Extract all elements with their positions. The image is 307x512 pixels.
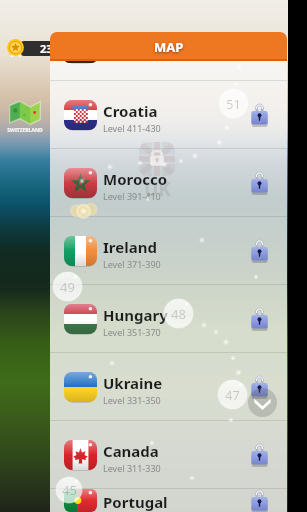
other: Locked <box>251 376 268 397</box>
button[interactable]: MAP <box>50 32 287 61</box>
staticText: Level 411-430 <box>103 122 161 134</box>
staticText: 45 <box>62 481 77 499</box>
button[interactable]: Hungary <box>50 285 287 352</box>
staticText: Level 331-350 <box>103 394 161 406</box>
staticText: Ukraine <box>103 373 163 393</box>
button[interactable]: Portugal <box>50 489 287 512</box>
button[interactable]: Morocco <box>50 149 287 216</box>
staticText: 230 <box>40 41 59 56</box>
other: Locked <box>251 172 268 193</box>
other: Coins <box>5 37 26 58</box>
staticText: Croatia <box>103 101 158 121</box>
staticText: Portugal <box>103 492 168 512</box>
button[interactable]: Scroll down <box>248 388 277 417</box>
staticText: Hungary <box>103 305 168 325</box>
button[interactable]: Ukraine <box>50 353 287 420</box>
staticText: Level 391-410 <box>103 190 161 202</box>
staticText: 51 <box>226 95 241 113</box>
other: Locked <box>251 490 268 511</box>
staticText: SWITZERLAND <box>3 127 47 134</box>
staticText: 47 <box>225 386 240 404</box>
staticText: Ireland <box>103 237 157 257</box>
staticText: 48 <box>171 305 186 323</box>
staticText: Canada <box>103 441 159 461</box>
other: Locked <box>251 104 268 125</box>
staticText: Morocco <box>103 169 168 189</box>
button[interactable]: Canada <box>50 421 287 488</box>
button[interactable]: 230 <box>21 41 61 56</box>
other: Locked <box>251 444 268 465</box>
other: Locked <box>251 308 268 329</box>
staticText: Level 311-330 <box>103 462 161 474</box>
other: Locked <box>251 240 268 261</box>
staticText: Level 351-370 <box>103 326 161 338</box>
staticText: 49 <box>60 278 75 296</box>
staticText: MAP <box>154 38 184 56</box>
staticText: Level 371-390 <box>103 258 161 270</box>
staticText: UK <box>144 176 171 202</box>
button[interactable]: Croatia <box>50 81 287 148</box>
button[interactable]: Ireland <box>50 217 287 284</box>
